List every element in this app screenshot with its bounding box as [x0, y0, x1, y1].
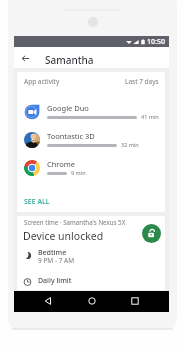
- staticText: 32 min: [121, 141, 139, 148]
- button[interactable]: Daily limit: [17, 275, 165, 290]
- staticText: 9 min: [71, 169, 86, 176]
- staticText: 41 min: [141, 113, 159, 120]
- button[interactable]: SEE ALL: [22, 195, 52, 209]
- staticText: Chrome: [47, 159, 76, 169]
- button[interactable]: Back: [40, 293, 56, 309]
- staticText: App activity: [24, 77, 60, 86]
- button[interactable]: Bedtime: [17, 247, 165, 267]
- staticText: SEE ALL: [24, 197, 50, 207]
- staticText: Samantha: [45, 53, 94, 67]
- button[interactable]: Recent apps: [127, 293, 143, 309]
- staticText: Screen time · Samantha's Nexus 5X: [24, 218, 126, 226]
- staticText: 9 PM - 7 AM: [38, 256, 75, 265]
- button[interactable]: Toontastic 3D: [17, 132, 165, 156]
- button[interactable]: Home: [84, 293, 100, 309]
- staticText: Toontastic 3D: [47, 131, 95, 141]
- staticText: Google Duo: [47, 103, 89, 113]
- staticText: Daily limit: [38, 276, 72, 286]
- staticText: Bedtime: [38, 248, 67, 258]
- button[interactable]: Navigate up: [18, 51, 33, 66]
- staticText: Last 7 days: [125, 77, 159, 86]
- staticText: 10:50: [147, 37, 165, 47]
- button[interactable]: Lock device: [142, 224, 161, 243]
- button[interactable]: Chrome: [17, 160, 165, 184]
- staticText: Device unlocked: [23, 229, 104, 243]
- button[interactable]: Google Duo: [17, 104, 165, 128]
